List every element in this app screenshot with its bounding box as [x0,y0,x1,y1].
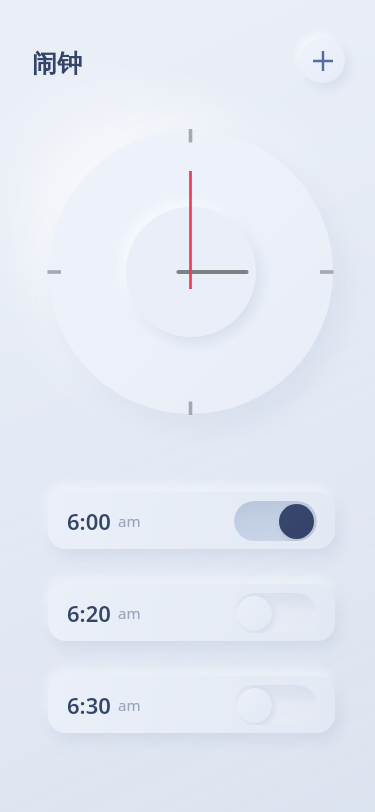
staticText: 闹钟 [32,48,82,79]
staticText: am [118,603,141,623]
button[interactable]: 6:20 [48,584,335,641]
staticText: 6:20 [67,598,111,628]
button[interactable]: Alarm enabled [234,501,317,541]
button[interactable]: 6:30 [48,676,335,733]
button[interactable]: Alarm disabled [234,593,317,633]
button[interactable]: Alarm disabled [234,685,317,725]
staticText: 6:00 [67,506,111,536]
staticText: am [118,511,141,531]
button[interactable]: 6:00 [48,492,335,549]
staticText: am [118,695,141,715]
staticText: 6:30 [67,690,111,720]
button[interactable]: Add alarm [300,38,345,83]
